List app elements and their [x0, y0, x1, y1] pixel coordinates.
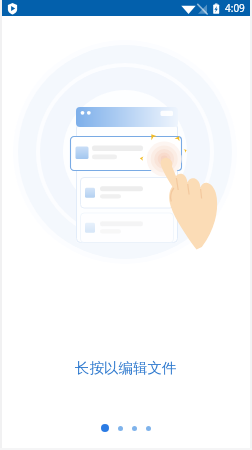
button[interactable]: Page [132, 426, 137, 431]
button[interactable]: Page 1 [101, 424, 109, 432]
button[interactable]: Page [146, 426, 151, 431]
staticText: 4:09 [225, 1, 245, 15]
staticText: 长按以编辑文件 [75, 359, 177, 377]
button[interactable]: Page [118, 426, 123, 431]
